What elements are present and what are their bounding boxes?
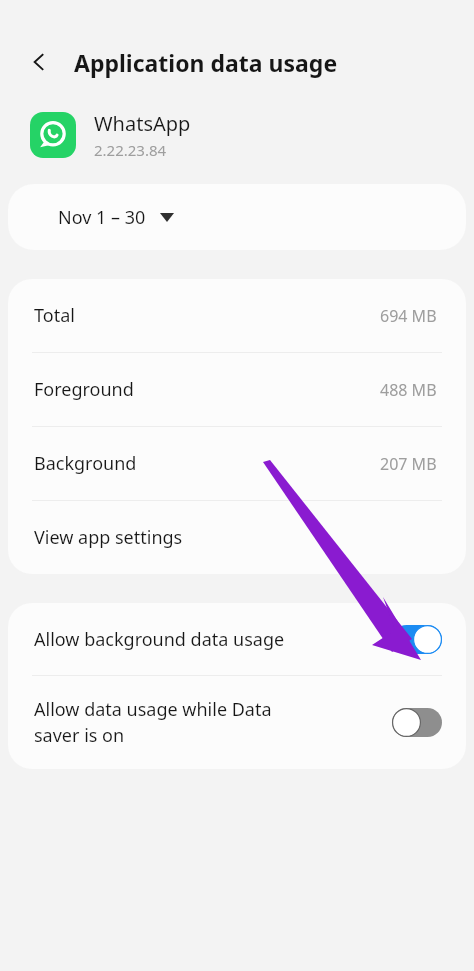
staticText: View app settings — [34, 525, 183, 550]
button[interactable]: Total — [8, 279, 466, 352]
staticText: 207 MB — [380, 453, 437, 475]
staticText: Foreground — [34, 377, 134, 402]
button[interactable]: Foreground — [8, 353, 466, 426]
staticText: Application data usage — [74, 47, 338, 78]
button[interactable]: Background — [8, 427, 466, 500]
staticText: WhatsApp — [94, 110, 191, 137]
staticText: Nov 1 – 30 — [58, 205, 146, 230]
button[interactable]: Allow data usage while Data saver is on — [8, 676, 466, 769]
staticText: Background — [34, 451, 137, 476]
button[interactable]: View app settings — [8, 501, 466, 574]
staticText: Total — [34, 303, 75, 328]
staticText: Allow background data usage — [34, 627, 380, 652]
staticText: Allow data usage while Data saver is on — [34, 697, 380, 748]
staticText: 2.22.23.84 — [94, 140, 167, 160]
button[interactable]: Back — [22, 45, 56, 79]
staticText: 694 MB — [380, 305, 437, 327]
staticText: 488 MB — [380, 379, 437, 401]
button[interactable]: Allow background data usage — [8, 603, 466, 675]
button[interactable]: Nov 1 – 30 — [8, 184, 466, 250]
